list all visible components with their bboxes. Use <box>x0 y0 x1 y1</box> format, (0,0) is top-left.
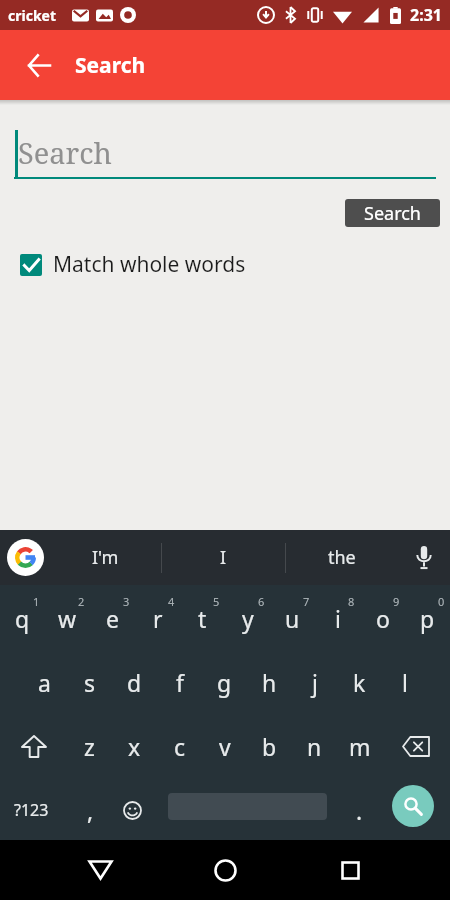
staticText: I'm <box>92 545 119 570</box>
button[interactable] <box>0 721 67 771</box>
button[interactable]: o <box>360 593 405 643</box>
staticText: p <box>420 603 435 634</box>
button[interactable]: p <box>405 593 450 643</box>
staticText: cricket <box>8 6 57 25</box>
staticText: g <box>217 667 232 698</box>
staticText: d <box>127 667 142 698</box>
button[interactable]: Search <box>345 199 440 227</box>
staticText: 7 <box>303 594 310 609</box>
button[interactable]: a <box>22 657 67 707</box>
staticText: a <box>38 667 51 698</box>
button[interactable]: n <box>292 721 337 771</box>
button[interactable]: . <box>340 785 378 835</box>
button[interactable]: r <box>135 593 180 643</box>
staticText: , <box>87 795 94 826</box>
staticText: l <box>402 667 408 698</box>
staticText: 2 <box>78 594 85 609</box>
button[interactable]: c <box>157 721 202 771</box>
staticText: Search <box>18 133 112 172</box>
button[interactable]: e <box>90 593 135 643</box>
staticText: . <box>356 795 363 826</box>
button[interactable]: g <box>202 657 247 707</box>
staticText: i <box>335 603 341 634</box>
button[interactable] <box>398 530 450 585</box>
staticText: 8 <box>348 594 355 609</box>
staticText: y <box>242 603 254 634</box>
button[interactable]: l <box>382 657 427 707</box>
staticText: 0 <box>438 594 445 609</box>
button[interactable] <box>320 840 380 900</box>
button[interactable]: ?123 <box>0 785 62 835</box>
staticText: o <box>376 603 390 634</box>
button[interactable]: z <box>67 721 112 771</box>
staticText: e <box>106 603 119 634</box>
staticText: 6 <box>258 594 265 609</box>
staticText: t <box>198 603 207 634</box>
staticText: 3 <box>123 594 130 609</box>
staticText: h <box>262 667 277 698</box>
staticText: u <box>285 603 300 634</box>
button[interactable]: k <box>337 657 382 707</box>
button[interactable]: t <box>180 593 225 643</box>
staticText: Match whole words <box>53 250 246 279</box>
button[interactable]: Match whole words <box>20 250 246 279</box>
button[interactable] <box>195 840 255 900</box>
button[interactable] <box>0 530 50 585</box>
button[interactable]: I'm <box>50 530 161 585</box>
button[interactable]: q <box>0 593 45 643</box>
button[interactable]: i <box>315 593 360 643</box>
staticText: v <box>219 731 231 762</box>
button[interactable]: w <box>45 593 90 643</box>
staticText: Search <box>364 201 421 226</box>
staticText: q <box>15 603 30 634</box>
button[interactable]: s <box>67 657 112 707</box>
button[interactable] <box>110 785 155 835</box>
button[interactable]: I <box>162 530 285 585</box>
staticText: 1 <box>33 594 40 609</box>
button[interactable]: u <box>270 593 315 643</box>
staticText: j <box>312 667 318 698</box>
staticText: f <box>176 667 184 698</box>
button[interactable]: m <box>337 721 382 771</box>
staticText: w <box>58 603 77 634</box>
button[interactable]: d <box>112 657 157 707</box>
staticText: k <box>353 667 366 698</box>
button[interactable]: , <box>68 785 113 835</box>
staticText: the <box>328 545 356 570</box>
staticText: s <box>84 667 96 698</box>
button[interactable]: h <box>247 657 292 707</box>
button[interactable]: v <box>202 721 247 771</box>
staticText: 2:31 <box>410 4 442 26</box>
button[interactable]: f <box>157 657 202 707</box>
staticText: r <box>153 603 163 634</box>
staticText: c <box>174 731 186 762</box>
staticText: x <box>128 731 141 762</box>
button[interactable] <box>392 785 434 827</box>
button[interactable]: x <box>112 721 157 771</box>
staticText: ?123 <box>14 799 49 821</box>
button[interactable] <box>382 721 450 771</box>
staticText: m <box>349 731 371 762</box>
button[interactable]: b <box>247 721 292 771</box>
button[interactable]: y <box>225 593 270 643</box>
button[interactable] <box>18 45 58 85</box>
button[interactable]: j <box>292 657 337 707</box>
staticText: z <box>84 731 95 762</box>
staticText: Search <box>75 51 146 80</box>
staticText: 5 <box>213 594 220 609</box>
staticText: I <box>220 545 227 570</box>
button[interactable]: the <box>286 530 398 585</box>
staticText: n <box>307 731 322 762</box>
staticText: 4 <box>168 594 175 609</box>
staticText: b <box>262 731 277 762</box>
button[interactable] <box>70 840 130 900</box>
staticText: 9 <box>393 594 400 609</box>
